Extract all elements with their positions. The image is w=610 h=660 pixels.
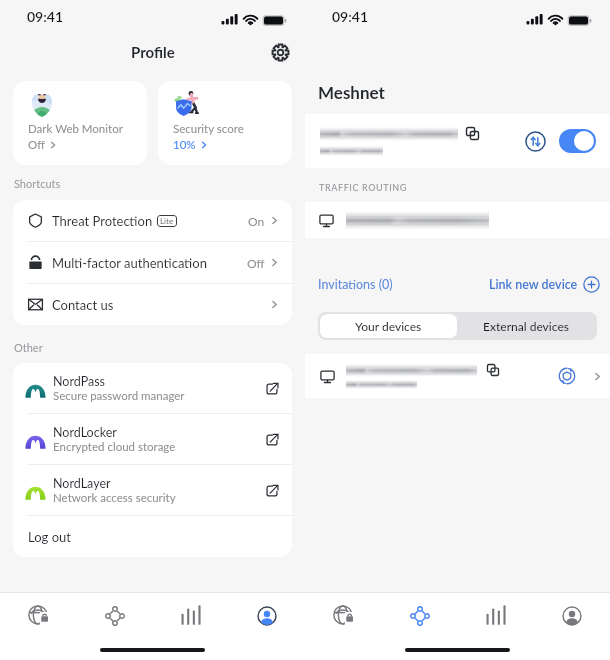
staticText: NordLayer [53,476,111,491]
button[interactable]: VPN [0,593,77,639]
button[interactable]: Traffic routing [525,131,546,152]
staticText: NordPass [53,374,105,389]
staticText: Off [28,138,45,152]
other: Copy address [466,127,479,140]
staticText: External devices [483,319,569,333]
staticText: Lite [160,216,174,226]
staticText: Link new device [489,277,578,292]
staticText: Shortcuts [14,177,61,190]
button[interactable]: Dark Web Monitor [13,81,147,165]
staticText: Contact us [52,297,114,313]
staticText: Profile [131,43,175,61]
button[interactable]: NordPass [13,363,292,413]
staticText: 10% [173,138,196,152]
staticText: Dark Web Monitor [28,122,123,136]
button[interactable]: External devices [457,314,595,338]
button[interactable]: Security score [158,81,292,165]
button[interactable]: NordLocker [13,414,292,464]
staticText: Multi-factor authentication [52,255,207,271]
button[interactable]: Your devices [320,314,457,338]
staticText: Meshnet [318,82,385,102]
button[interactable]: VPN [305,593,382,639]
staticText: NordLocker [53,425,117,440]
staticText: Secure password manager [53,389,185,403]
staticText: Network access security [53,491,176,505]
button[interactable]: Multi-factor authentication [13,242,292,283]
button[interactable]: Toggle meshnet [559,129,596,153]
button[interactable]: Link new device [489,276,600,293]
button[interactable]: Log out [13,516,292,557]
button[interactable]: Contact us [13,284,292,325]
staticText: Other [14,341,43,354]
other: Copy [487,364,499,376]
staticText: Security score [173,122,244,136]
button[interactable]: Profile [229,593,305,639]
button[interactable]: Profile [534,593,610,639]
staticText: Off [247,256,265,270]
staticText: Log out [28,529,71,545]
button[interactable]: Invitations (0) [317,277,394,292]
button[interactable]: NordLayer [13,465,292,515]
button[interactable]: Copy address [305,114,610,168]
staticText: Your devices [355,319,422,333]
staticText: On [248,214,265,228]
staticText: 09:41 [27,8,64,25]
button[interactable]: Stats [458,593,534,639]
staticText: TRAFFIC ROUTING [319,182,407,193]
staticText: Threat Protection [52,213,153,229]
staticText: Encrypted cloud storage [53,440,176,454]
button[interactable]: Threat Protection [13,200,292,241]
button[interactable]: Settings [267,39,293,65]
button[interactable] [305,202,610,238]
staticText: 09:41 [332,8,369,25]
button[interactable]: Meshnet [382,593,458,639]
button[interactable]: Refresh [558,367,576,385]
button[interactable]: Copy [305,354,610,398]
staticText: Invitations (0) [318,277,393,292]
button[interactable]: Stats [153,593,229,639]
button[interactable]: Meshnet [77,593,153,639]
